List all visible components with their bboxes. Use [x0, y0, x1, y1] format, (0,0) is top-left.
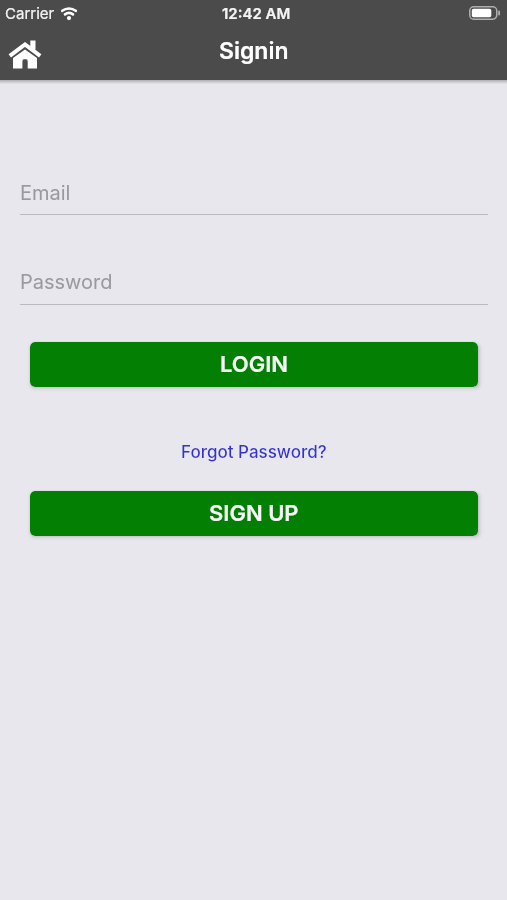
staticText: Carrier: [5, 4, 55, 22]
staticText: SIGN UP: [209, 500, 299, 527]
button[interactable]: Password: [20, 270, 113, 294]
button[interactable]: Forgot Password?: [181, 442, 327, 463]
button[interactable]: [6, 35, 44, 73]
button[interactable]: SIGN UP: [30, 491, 478, 536]
staticText: LOGIN: [220, 351, 288, 378]
staticText: 12:42 AM: [222, 4, 291, 22]
button[interactable]: LOGIN: [30, 342, 478, 387]
button[interactable]: Email: [20, 181, 71, 205]
staticText: Signin: [219, 37, 289, 65]
